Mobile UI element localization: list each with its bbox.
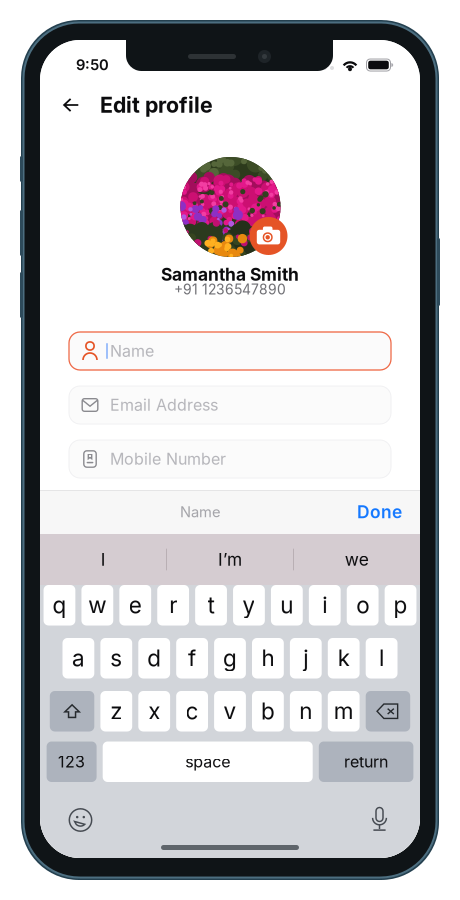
staticText: space	[185, 752, 230, 771]
button[interactable]: p	[385, 585, 416, 625]
staticText: 9:50	[76, 56, 109, 74]
staticText: d	[147, 644, 161, 672]
staticText: z	[110, 697, 122, 725]
button[interactable]: Dictation	[370, 806, 389, 833]
staticText: c	[186, 697, 199, 725]
button[interactable]: c	[176, 691, 208, 731]
staticText: a	[72, 644, 85, 672]
button[interactable]: m	[328, 691, 360, 731]
staticText: b	[261, 697, 275, 725]
button[interactable]: b	[252, 691, 284, 731]
staticText: u	[280, 591, 293, 619]
button[interactable]: y	[233, 585, 265, 625]
button[interactable]: s	[100, 638, 132, 678]
staticText: Name	[110, 341, 154, 361]
staticText: w	[88, 591, 106, 619]
button[interactable]: f	[176, 638, 208, 678]
staticText: we	[345, 549, 369, 570]
button[interactable]: a	[62, 638, 94, 678]
staticText: l	[379, 644, 384, 672]
button[interactable]: Shift	[50, 691, 94, 731]
staticText: r	[169, 591, 177, 619]
button[interactable]: Name	[69, 332, 391, 370]
button[interactable]: r	[157, 585, 189, 625]
staticText: p	[393, 591, 407, 619]
staticText: h	[261, 644, 274, 672]
staticText: m	[334, 697, 354, 725]
button[interactable]: o	[347, 585, 378, 625]
button[interactable]: e	[119, 585, 151, 625]
button[interactable]: i	[309, 585, 341, 625]
staticText: return	[344, 752, 388, 771]
button[interactable]: Done	[343, 493, 402, 530]
button[interactable]: Delete	[366, 691, 410, 731]
button[interactable]: Emoji keyboard	[68, 807, 93, 832]
staticText: s	[110, 644, 122, 672]
staticText: y	[242, 591, 255, 619]
staticText: t	[207, 591, 214, 619]
staticText: 123	[58, 752, 85, 771]
button[interactable]: x	[138, 691, 170, 731]
staticText: I	[101, 549, 106, 570]
button[interactable]: l	[366, 638, 397, 678]
button[interactable]: n	[290, 691, 322, 731]
button[interactable]: space	[103, 741, 313, 782]
staticText: o	[356, 591, 369, 619]
staticText: Done	[357, 501, 402, 522]
button[interactable]: d	[138, 638, 170, 678]
button[interactable]: I’m	[167, 534, 293, 585]
button[interactable]: j	[290, 638, 322, 678]
button[interactable]: u	[271, 585, 303, 625]
staticText: g	[223, 644, 237, 672]
button[interactable]: return	[319, 741, 413, 782]
staticText: Email Address	[110, 395, 218, 415]
staticText: Samantha Smith	[161, 264, 299, 285]
button[interactable]: h	[252, 638, 284, 678]
button[interactable]: g	[214, 638, 246, 678]
staticText: j	[303, 644, 308, 672]
button[interactable]: Back	[56, 90, 86, 120]
button[interactable]: t	[195, 585, 227, 625]
button[interactable]: k	[328, 638, 360, 678]
staticText: f	[188, 644, 196, 672]
button[interactable]: I	[40, 534, 167, 585]
button[interactable]: Change profile photo	[249, 217, 287, 255]
button[interactable]: we	[293, 534, 420, 585]
staticText: Name	[180, 503, 221, 521]
staticText: k	[338, 644, 350, 672]
button[interactable]: w	[81, 585, 113, 625]
staticText: +91 1236547890	[174, 281, 286, 298]
button[interactable]: q	[43, 585, 75, 625]
staticText: Edit profile	[100, 92, 213, 118]
button[interactable]: z	[100, 691, 132, 731]
staticText: Mobile Number	[110, 449, 226, 469]
staticText: I’m	[218, 549, 242, 570]
staticText: i	[322, 591, 327, 619]
staticText: x	[148, 697, 160, 725]
staticText: q	[52, 591, 66, 619]
button[interactable]: v	[214, 691, 246, 731]
staticText: n	[299, 697, 312, 725]
staticText: v	[223, 697, 236, 725]
button[interactable]: Mobile Number	[69, 440, 391, 478]
button[interactable]: 123	[47, 741, 97, 782]
staticText: e	[129, 591, 142, 619]
button[interactable]: Email Address	[69, 386, 391, 424]
